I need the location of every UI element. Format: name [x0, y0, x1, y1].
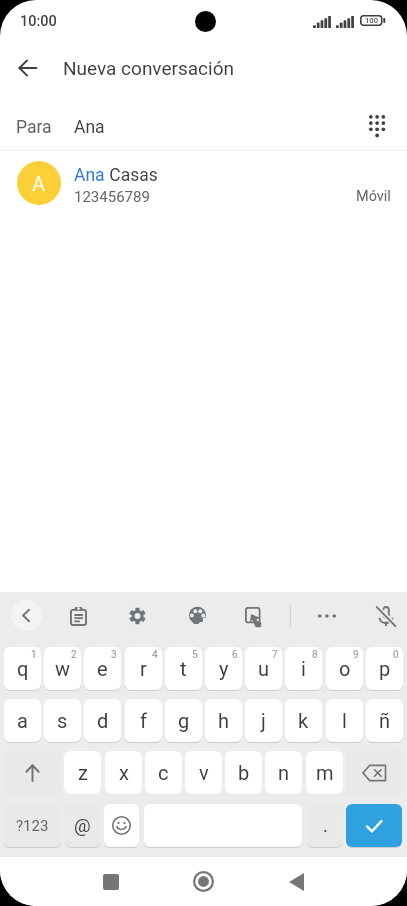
staticText: v	[199, 761, 209, 784]
staticText: Nueva conversación	[63, 57, 234, 79]
staticText: Móvil	[356, 188, 391, 205]
button[interactable]: s	[44, 699, 81, 742]
staticText: 6	[232, 649, 238, 661]
staticText: 10:00	[20, 13, 57, 30]
button[interactable]: @	[65, 804, 100, 847]
button[interactable]: Cambiar tamaño	[238, 600, 270, 632]
staticText: .	[323, 815, 328, 837]
staticText: k	[298, 709, 309, 732]
staticText: 7	[272, 649, 278, 661]
button[interactable]: Aceptar	[346, 804, 402, 847]
button[interactable]: Teclado de marcación	[355, 104, 399, 148]
staticText: 0	[393, 649, 399, 661]
staticText: e	[97, 657, 108, 680]
button[interactable]: Atrás	[6, 46, 50, 90]
button[interactable]: f	[125, 699, 162, 742]
staticText: m	[316, 761, 334, 784]
staticText: r	[140, 657, 147, 680]
staticText: Casas	[105, 165, 158, 186]
staticText: g	[178, 709, 190, 732]
button[interactable]: g	[165, 699, 202, 742]
button[interactable]: p	[366, 647, 403, 690]
staticText: i	[301, 657, 306, 680]
staticText: ñ	[379, 709, 391, 732]
staticText: 2	[71, 649, 77, 661]
staticText: Ana	[74, 117, 105, 138]
button[interactable]: e	[84, 647, 121, 690]
button[interactable]: Micrófono desactivado	[370, 600, 402, 632]
button[interactable]: l	[326, 699, 363, 742]
staticText: a	[17, 709, 28, 732]
button[interactable]: ñ	[366, 699, 403, 742]
staticText: o	[339, 657, 351, 680]
button[interactable]: b	[225, 751, 262, 794]
button[interactable]: Portapapeles	[62, 600, 94, 632]
button[interactable]: .	[307, 804, 343, 847]
staticText: 8	[312, 649, 318, 661]
staticText: u	[258, 657, 270, 680]
staticText: b	[238, 761, 250, 784]
button[interactable]: q	[4, 647, 41, 690]
staticText: w	[55, 657, 71, 680]
button[interactable]: k	[285, 699, 322, 742]
button[interactable]: t	[165, 647, 202, 690]
button[interactable]: z	[64, 751, 101, 794]
button[interactable]: Más opciones	[311, 600, 343, 632]
button[interactable]: Retroceso	[346, 751, 403, 794]
staticText: z	[78, 761, 88, 784]
staticText: x	[119, 761, 129, 784]
staticText: A	[32, 172, 46, 195]
button[interactable]: m	[306, 751, 343, 794]
button[interactable]: Ocultar teclado	[11, 600, 42, 631]
button[interactable]: j	[245, 699, 282, 742]
button[interactable]: Ajustes	[121, 600, 153, 632]
staticText: 4	[152, 649, 158, 661]
button[interactable]: n	[265, 751, 302, 794]
button[interactable]: r	[125, 647, 162, 690]
staticText: Para	[16, 117, 52, 138]
staticText: t	[180, 657, 187, 680]
staticText: Ana	[74, 165, 105, 186]
staticText: c	[158, 761, 169, 784]
staticText: s	[57, 709, 68, 732]
staticText: 5	[192, 649, 198, 661]
button[interactable]: Inicio	[179, 857, 228, 906]
staticText: n	[278, 761, 290, 784]
staticText: y	[219, 657, 229, 680]
staticText: 9	[353, 649, 359, 661]
button[interactable]: x	[105, 751, 142, 794]
button[interactable]: Mayúsculas	[4, 751, 61, 794]
button[interactable]: v	[185, 751, 222, 794]
button[interactable]: w	[44, 647, 81, 690]
staticText: 100	[365, 16, 378, 25]
button[interactable]: u	[245, 647, 282, 690]
staticText: q	[17, 657, 29, 680]
button[interactable]: ?123	[4, 804, 61, 847]
staticText: @	[74, 815, 91, 837]
staticText: j	[261, 709, 266, 732]
staticText: 3	[111, 649, 117, 661]
button[interactable]: Aplicaciones recientes	[86, 857, 135, 906]
button[interactable]: c	[145, 751, 182, 794]
staticText: h	[218, 709, 230, 732]
button[interactable]: Tema	[181, 600, 213, 632]
staticText: 1	[31, 649, 37, 661]
button[interactable]	[0, 151, 407, 220]
button[interactable]: y	[205, 647, 242, 690]
button[interactable]: h	[205, 699, 242, 742]
staticText: l	[342, 709, 347, 732]
staticText: d	[97, 709, 109, 732]
button[interactable]: i	[285, 647, 322, 690]
staticText: p	[379, 657, 391, 680]
button[interactable]: a	[4, 699, 41, 742]
button[interactable]: d	[84, 699, 121, 742]
staticText: ?123	[16, 817, 49, 835]
button[interactable]: Emoji	[104, 804, 139, 847]
staticText: f	[140, 709, 147, 732]
button[interactable]: o	[326, 647, 363, 690]
button[interactable]: Atrás	[272, 857, 321, 906]
staticText: 123456789	[74, 188, 150, 206]
